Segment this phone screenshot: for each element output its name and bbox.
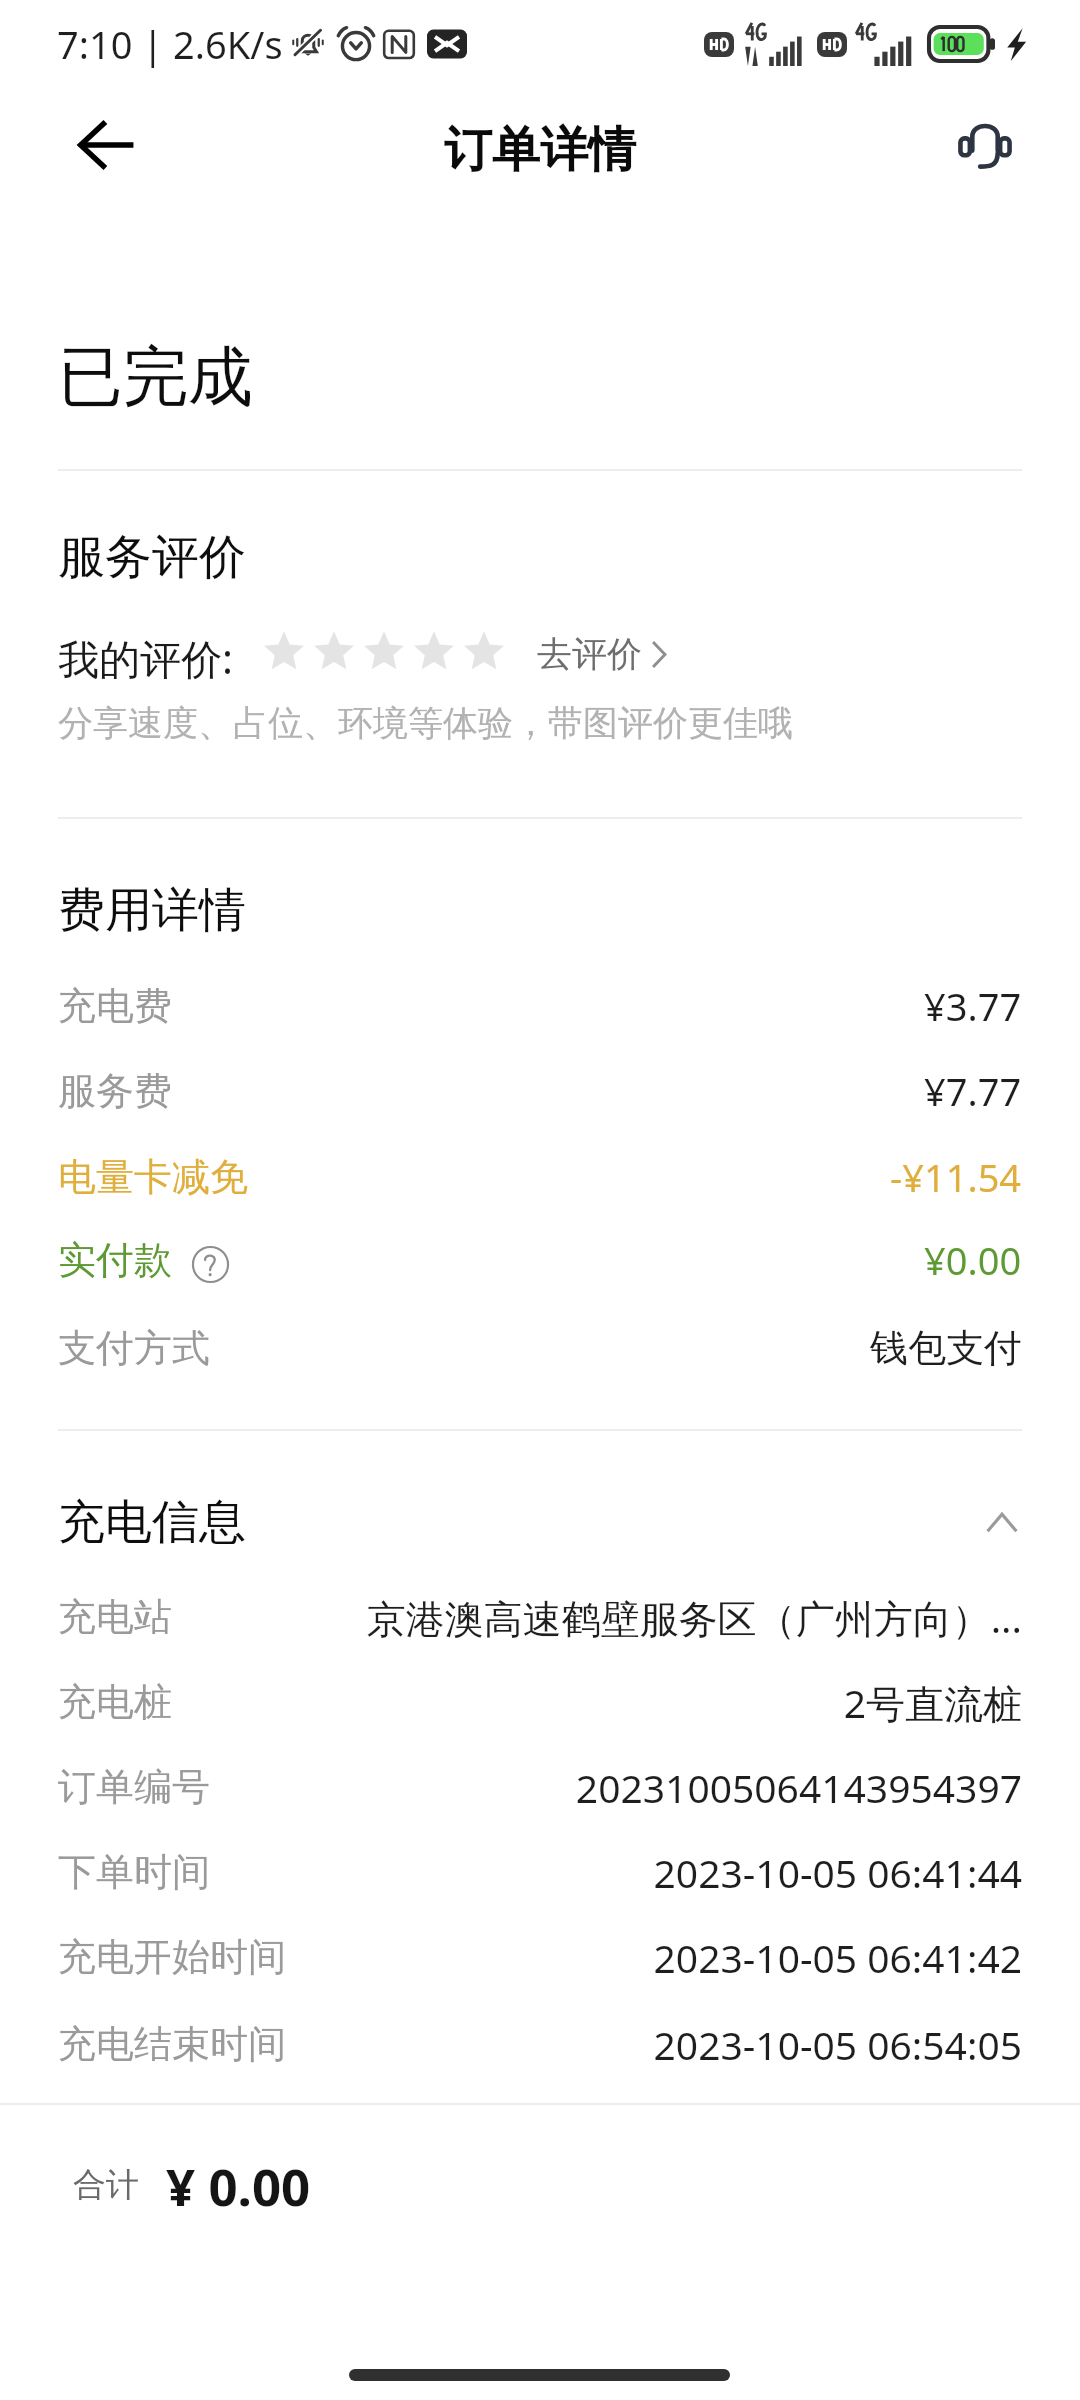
staticText: 支付方式	[58, 1324, 210, 1372]
staticText: 充电费	[58, 982, 172, 1030]
staticText: 去评价	[537, 632, 642, 676]
staticText: 20231005064143954397	[575, 1761, 1022, 1814]
staticText: 充电信息	[58, 1493, 246, 1552]
staticText: ¥ 0.00	[166, 2151, 311, 2220]
button[interactable]: 去评价	[537, 621, 667, 687]
staticText: 费用详情	[58, 881, 246, 940]
staticText: 钱包支付	[870, 1324, 1022, 1372]
staticText: ¥7.77	[924, 1065, 1022, 1117]
staticText: 2023-10-05 06:41:42	[653, 1931, 1022, 1984]
staticText: 下单时间	[58, 1848, 210, 1896]
button[interactable]: Customer service	[940, 99, 1030, 189]
staticText: 充电站	[58, 1593, 172, 1641]
staticText: 充电结束时间	[58, 2020, 286, 2068]
staticText: 2号直流桩	[843, 1676, 1022, 1729]
staticText: 服务评价	[58, 528, 246, 587]
staticText: 我的评价:	[58, 630, 233, 686]
staticText: 合计	[73, 2164, 139, 2206]
staticText: ¥3.77	[924, 980, 1022, 1032]
staticText: 2023-10-05 06:41:44	[653, 1846, 1022, 1899]
staticText: 充电桩	[58, 1678, 172, 1726]
staticText: 订单详情	[444, 120, 636, 180]
staticText: 分享速度、占位、环境等体验，带图评价更佳哦	[58, 701, 793, 745]
staticText: 充电开始时间	[58, 1933, 286, 1981]
button[interactable]: 充电信息	[58, 1489, 1017, 1555]
staticText: 已完成	[58, 336, 253, 418]
button[interactable]: Help	[186, 1240, 234, 1288]
button[interactable]: Rate 5 stars	[263, 623, 505, 679]
staticText: 服务费	[58, 1067, 172, 1115]
staticText: 电量卡减免	[58, 1153, 248, 1201]
staticText: 京港澳高速鹤壁服务区（广州方向）...	[366, 1591, 1022, 1644]
button[interactable]: Back	[61, 100, 151, 190]
staticText: 2023-10-05 06:54:05	[653, 2018, 1022, 2071]
staticText: ¥0.00	[924, 1234, 1022, 1286]
staticText: 订单编号	[58, 1763, 210, 1811]
staticText: -¥11.54	[890, 1151, 1022, 1203]
staticText: 实付款	[58, 1236, 172, 1284]
staticText: 7:10 | 2.6K/s	[57, 18, 283, 70]
